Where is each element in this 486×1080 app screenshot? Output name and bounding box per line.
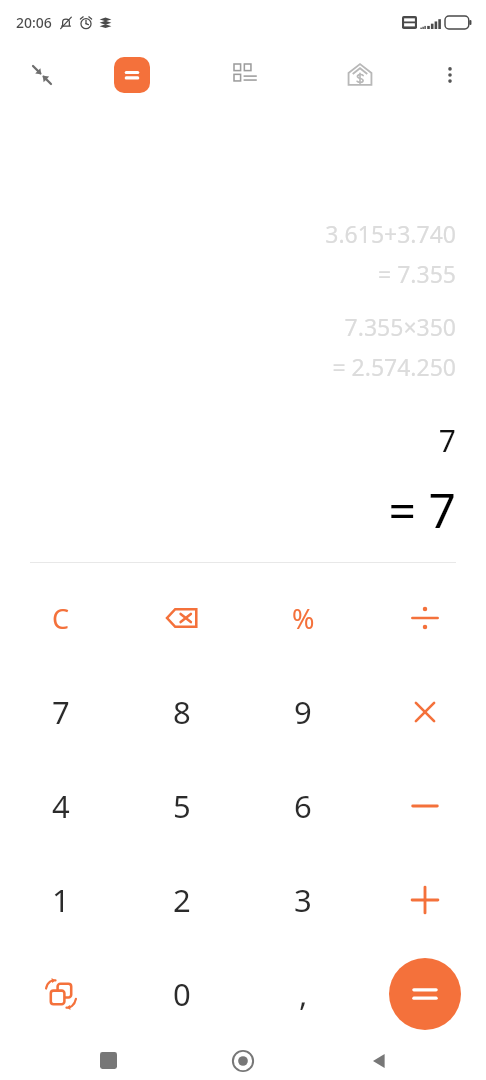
staticText: 2: [173, 879, 191, 921]
button[interactable]: 0: [121, 947, 242, 1041]
button[interactable]: Divide: [364, 571, 486, 665]
staticText: 9: [294, 691, 312, 733]
other: Divide: [410, 603, 440, 633]
button[interactable]: 7: [0, 665, 121, 759]
staticText: 3.615+3.740: [325, 218, 456, 249]
staticText: 7: [52, 691, 70, 733]
staticText: 8: [173, 691, 191, 733]
other: Plus: [410, 885, 440, 915]
staticText: 20:06: [16, 13, 52, 32]
button[interactable]: 6: [242, 759, 364, 853]
button[interactable]: 8: [121, 665, 242, 759]
staticText: 7.355×350: [344, 311, 456, 342]
staticText: ,: [299, 973, 308, 1015]
button[interactable]: Calculator: [114, 57, 150, 93]
staticText: = 2.574.250: [332, 351, 456, 382]
staticText: C: [52, 600, 70, 637]
staticText: = 7.355: [378, 258, 456, 289]
button[interactable]: 4: [0, 759, 121, 853]
button[interactable]: Multiply: [364, 665, 486, 759]
button[interactable]: Mortgage: [338, 53, 382, 97]
staticText: 1: [52, 879, 70, 921]
button[interactable]: Recents: [80, 1041, 136, 1080]
button[interactable]: Swap units: [0, 947, 121, 1041]
button[interactable]: Equals: [389, 958, 461, 1030]
button[interactable]: Converters: [225, 55, 265, 95]
staticText: 0: [173, 973, 191, 1015]
button[interactable]: 2: [121, 853, 242, 947]
other: Swap units: [44, 977, 78, 1011]
button[interactable]: 5: [121, 759, 242, 853]
staticText: %: [292, 600, 315, 637]
button[interactable]: Minus: [364, 759, 486, 853]
button[interactable]: Plus: [364, 853, 486, 947]
button[interactable]: Home: [215, 1041, 271, 1080]
button[interactable]: More options: [430, 55, 470, 95]
button[interactable]: ,: [242, 947, 364, 1041]
button[interactable]: Backspace: [121, 571, 242, 665]
button[interactable]: 3: [242, 853, 364, 947]
button[interactable]: Back: [351, 1041, 407, 1080]
staticText: 5: [173, 785, 191, 827]
button[interactable]: %: [242, 571, 364, 665]
other: Multiply: [412, 699, 438, 725]
staticText: 4: [52, 785, 70, 827]
other: Minus: [411, 792, 439, 820]
button[interactable]: 1: [0, 853, 121, 947]
staticText: 3: [294, 879, 312, 921]
button[interactable]: 9: [242, 665, 364, 759]
staticText: 7: [438, 420, 456, 461]
other: Backspace: [165, 601, 199, 635]
staticText: 6: [294, 785, 312, 827]
staticText: = 7: [388, 477, 456, 542]
button[interactable]: C: [0, 571, 121, 665]
button[interactable]: Collapse: [22, 55, 62, 95]
